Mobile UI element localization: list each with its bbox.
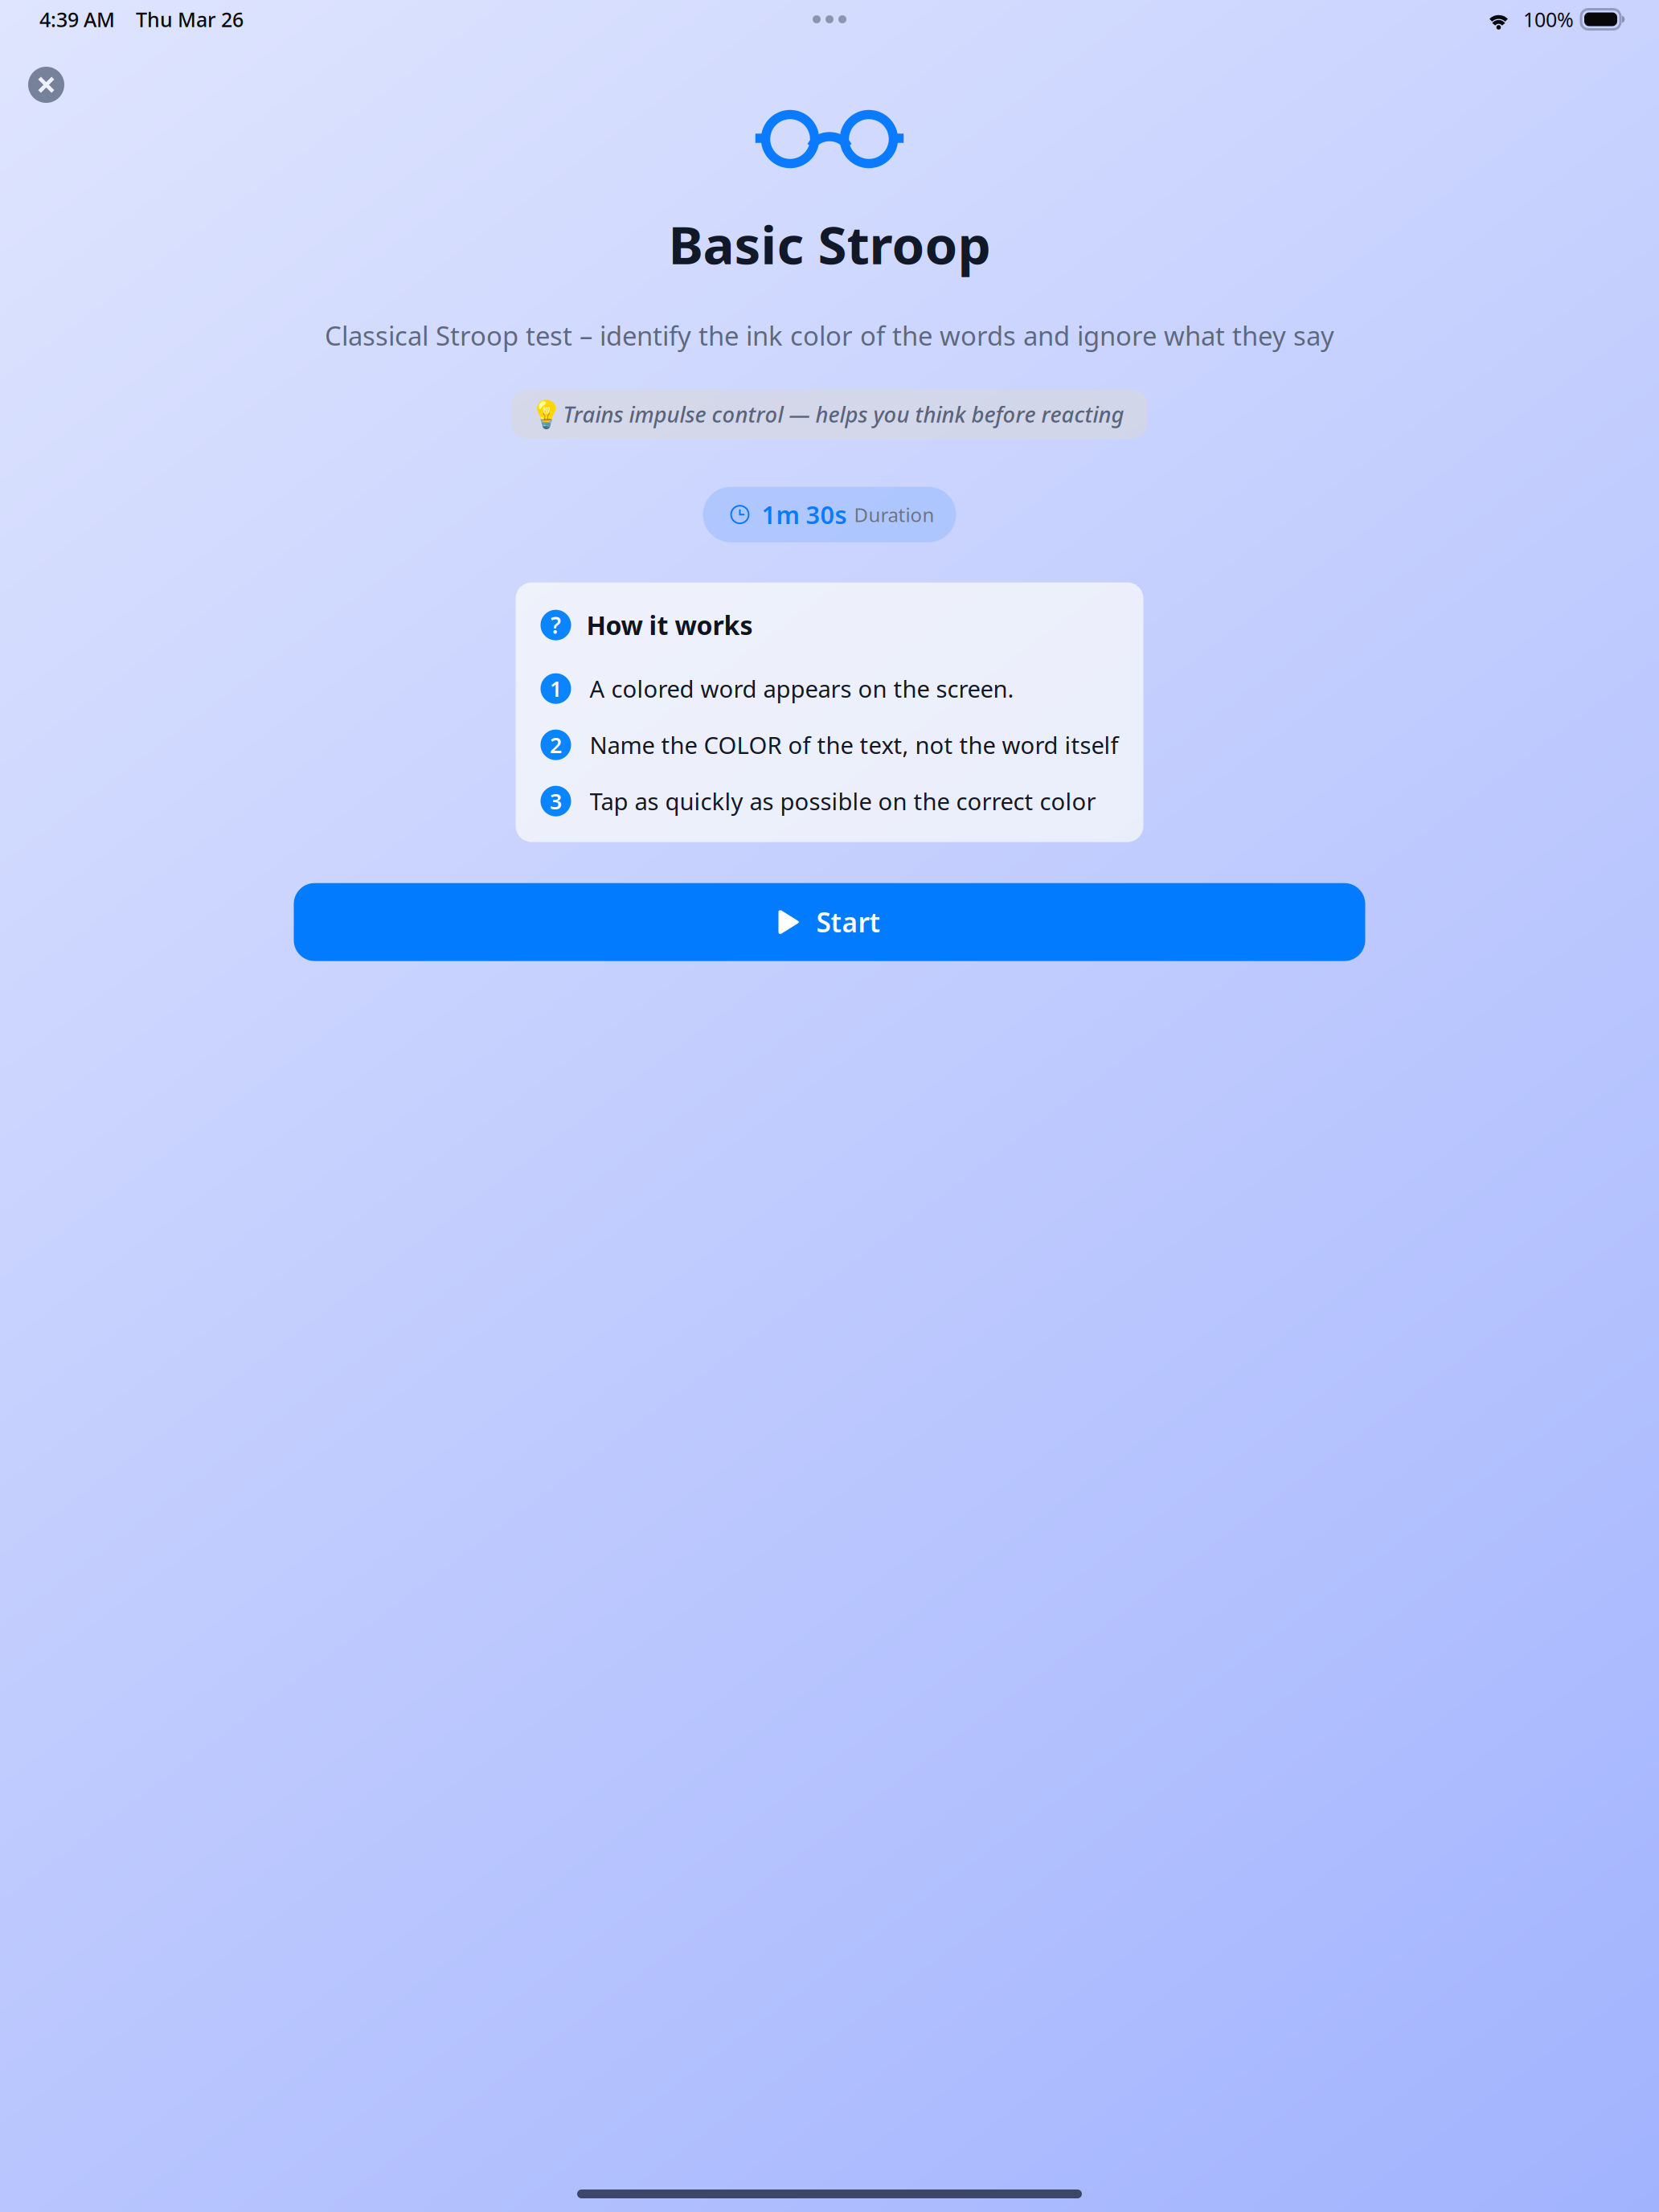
staticText: 1m 30s — [762, 498, 847, 531]
staticText: Start — [816, 904, 881, 940]
staticText: A colored word appears on the screen. — [590, 673, 1014, 705]
staticText: Duration — [854, 501, 934, 528]
staticText: 100% — [1523, 6, 1574, 33]
staticText: Thu Mar 26 — [136, 6, 244, 33]
staticText: Name the COLOR of the text, not the word… — [590, 729, 1118, 761]
staticText: Classical Stroop test – identify the ink… — [325, 317, 1334, 353]
staticText: 1 — [550, 674, 562, 703]
staticText: 💡 — [529, 398, 563, 430]
staticText: ? — [551, 610, 561, 640]
staticText: Tap as quickly as possible on the correc… — [590, 785, 1096, 817]
staticText: How it works — [586, 608, 753, 643]
staticText: 3 — [550, 786, 562, 816]
staticText: Trains impulse control — helps you think… — [563, 399, 1124, 429]
staticText: 4:39 AM — [39, 6, 115, 33]
button[interactable]: Start — [294, 883, 1365, 961]
button[interactable]: Close — [0, 57, 80, 113]
staticText: Basic Stroop — [668, 208, 991, 280]
staticText: 2 — [550, 730, 562, 759]
